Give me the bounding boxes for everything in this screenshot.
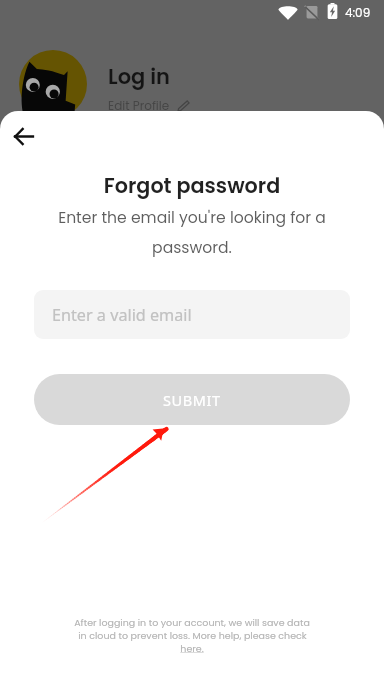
button[interactable]: SUBMIT [34,374,350,425]
button[interactable]: here. [180,642,204,655]
button[interactable]: Back [6,119,40,153]
staticText: Edit Profile [108,97,170,114]
staticText: Enter the email you're looking for a pas… [44,207,340,258]
staticText: Enter a valid email [52,304,192,326]
staticText: Log in [108,62,170,91]
staticText: in cloud to prevent loss. More help, ple… [78,629,307,642]
staticText: SUBMIT [163,390,221,410]
button[interactable]: Edit Profile [108,97,190,114]
staticText: 4:09 [345,4,371,21]
staticText: After logging in to your account, we wil… [74,616,310,629]
staticText: Forgot password [0,171,384,200]
button[interactable]: Enter a valid email [34,290,350,339]
